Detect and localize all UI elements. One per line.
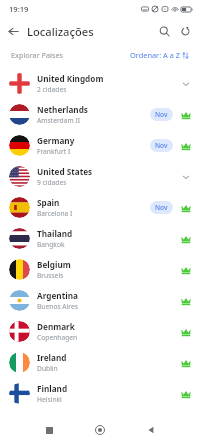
button[interactable]: Expand: [178, 76, 193, 91]
staticText: 9 cidades: [37, 178, 67, 187]
button[interactable]: Belgium: [0, 254, 200, 285]
staticText: Ireland: [37, 352, 67, 363]
button[interactable]: Netherlands: [0, 99, 200, 130]
staticText: Bangkok: [37, 240, 65, 249]
staticText: Helsinki: [37, 395, 62, 404]
button[interactable]: Back: [139, 418, 163, 442]
button[interactable]: Premium: [178, 355, 193, 370]
staticText: Brussels: [37, 271, 64, 280]
button[interactable]: Premium: [178, 262, 193, 277]
button[interactable]: Ordenar: A a Z: [130, 48, 189, 62]
staticText: Amsterdam II: [37, 116, 80, 125]
button[interactable]: Germany: [0, 130, 200, 161]
button[interactable]: Premium: [178, 293, 193, 308]
staticText: Thailand: [37, 228, 73, 239]
button[interactable]: Nov: [150, 139, 173, 152]
button[interactable]: Nov: [150, 108, 173, 121]
staticText: Finland: [37, 383, 68, 394]
staticText: Spain: [37, 197, 60, 208]
button[interactable]: Back: [2, 20, 25, 43]
staticText: Frankfurt I: [37, 147, 71, 156]
staticText: Copenhagen: [37, 333, 78, 342]
button[interactable]: Premium: [178, 231, 193, 246]
button[interactable]: Ireland: [0, 347, 200, 378]
button[interactable]: Nov: [150, 201, 173, 214]
staticText: Belgium: [37, 259, 71, 270]
staticText: Explorar Países: [11, 50, 64, 60]
button[interactable]: Search: [154, 21, 175, 42]
button[interactable]: Argentina: [0, 285, 200, 316]
button[interactable]: United Kingdom: [0, 68, 200, 99]
staticText: United States: [37, 166, 93, 177]
button[interactable]: Recent apps: [37, 418, 61, 442]
staticText: Barcelona I: [37, 209, 73, 218]
button[interactable]: Premium: [178, 386, 193, 401]
button[interactable]: Home: [88, 418, 112, 442]
button[interactable]: Spain: [0, 192, 200, 223]
button[interactable]: Expand: [178, 169, 193, 184]
staticText: Ordenar: A a Z: [130, 50, 180, 60]
staticText: Nov: [155, 141, 168, 150]
staticText: Buenos Aires: [37, 302, 78, 311]
button[interactable]: Premium: [178, 200, 193, 215]
staticText: Localizações: [27, 24, 94, 39]
staticText: Germany: [37, 135, 75, 146]
staticText: Denmark: [37, 321, 75, 332]
button[interactable]: United States: [0, 161, 200, 192]
button[interactable]: Denmark: [0, 316, 200, 347]
staticText: United Kingdom: [37, 73, 104, 84]
staticText: 19:19: [9, 4, 29, 14]
button[interactable]: Premium: [178, 324, 193, 339]
button[interactable]: Premium: [178, 138, 193, 153]
staticText: Nov: [155, 110, 168, 119]
staticText: Netherlands: [37, 104, 88, 115]
staticText: 2 cidades: [37, 85, 67, 94]
staticText: Argentina: [37, 290, 78, 301]
staticText: Nov: [155, 203, 168, 212]
button[interactable]: Finland: [0, 378, 200, 409]
button[interactable]: Refresh: [175, 21, 196, 42]
staticText: Dublin: [37, 364, 58, 373]
button[interactable]: Thailand: [0, 223, 200, 254]
button[interactable]: Premium: [178, 107, 193, 122]
